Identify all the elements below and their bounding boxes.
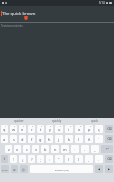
button[interactable]: Backspace — [105, 125, 113, 133]
button[interactable]: Backspace — [105, 155, 113, 163]
staticText: ç — [98, 127, 100, 132]
staticText: c — [26, 147, 28, 152]
button[interactable]: f — [28, 135, 35, 143]
button[interactable]: ? — [28, 155, 35, 163]
staticText: ? — [31, 157, 33, 162]
button[interactable]: ¿ — [19, 155, 26, 163]
button[interactable]: b — [41, 145, 49, 153]
staticText: r — [31, 127, 33, 132]
button[interactable]: 4 — [28, 125, 35, 133]
button[interactable]: Move cursor left — [95, 165, 103, 173]
button[interactable]: g — [37, 135, 44, 143]
staticText: ¿ — [22, 157, 24, 162]
button[interactable]: ) — [75, 155, 83, 163]
button[interactable]: ñ — [85, 135, 93, 143]
button[interactable]: Enter — [101, 145, 113, 153]
button[interactable]: z — [5, 145, 12, 153]
staticText: ?123 — [2, 168, 8, 171]
staticText: 5 — [41, 125, 43, 128]
staticText: k — [68, 137, 71, 142]
staticText: quicker — [14, 119, 24, 123]
button[interactable]: : — [46, 155, 53, 163]
button[interactable]: ( — [65, 155, 73, 163]
staticText: English (US) — [55, 168, 69, 171]
staticText: ⚙ — [13, 168, 16, 171]
button[interactable]: Settings — [11, 165, 18, 173]
staticText: - — [84, 147, 86, 152]
button[interactable]: 2 — [10, 125, 17, 133]
button[interactable]: ?123 — [1, 165, 9, 173]
button[interactable]: ; — [37, 155, 44, 163]
staticText: quick — [91, 119, 99, 123]
staticText: ( — [68, 157, 70, 162]
button[interactable]: quickly — [38, 118, 76, 124]
button[interactable]: 3 — [19, 125, 26, 133]
button[interactable]: 8 — [65, 125, 73, 133]
staticText: m — [63, 147, 67, 152]
button[interactable]: English (US) — [30, 165, 93, 173]
button[interactable]: j — [55, 135, 63, 143]
button[interactable]: 7 — [55, 125, 63, 133]
staticText: 1 — [5, 125, 7, 128]
button[interactable]: d — [19, 135, 26, 143]
staticText: x — [16, 147, 19, 152]
button[interactable]: a — [1, 135, 8, 143]
button[interactable]: l — [75, 135, 83, 143]
button[interactable]: 0 — [85, 125, 93, 133]
button[interactable]: , — [85, 155, 93, 163]
staticText: . — [98, 157, 100, 162]
button[interactable]: k — [65, 135, 73, 143]
button[interactable]: _ — [91, 145, 99, 153]
staticText: 9 — [80, 125, 82, 128]
button[interactable]: Move cursor right — [105, 165, 113, 173]
staticText: a — [3, 137, 6, 142]
staticText: 6 — [50, 125, 52, 128]
button[interactable]: c — [23, 145, 30, 153]
button[interactable]: 5 — [37, 125, 44, 133]
button[interactable]: quicker — [0, 118, 38, 124]
button[interactable]: 6 — [46, 125, 53, 133]
staticText: u — [58, 127, 61, 132]
staticText: s — [13, 137, 15, 142]
button[interactable]: n — [51, 145, 59, 153]
button[interactable]: 1 — [1, 125, 8, 133]
staticText: i — [68, 127, 70, 132]
staticText: : — [49, 157, 50, 162]
button[interactable]: - — [81, 145, 89, 153]
staticText: ⇧ — [3, 157, 6, 161]
staticText: The quick brown — [2, 10, 36, 16]
staticText: v — [35, 147, 37, 152]
button[interactable]: v — [32, 145, 39, 153]
staticText: ñ — [88, 137, 91, 142]
button[interactable]: s — [10, 135, 17, 143]
button[interactable]: ´ — [95, 135, 103, 143]
button[interactable]: ! — [10, 155, 17, 163]
button[interactable]: · — [71, 145, 79, 153]
button[interactable]: h — [46, 135, 53, 143]
button[interactable]: . — [95, 155, 103, 163]
staticText: p — [88, 127, 91, 132]
button[interactable]: quick — [76, 118, 114, 124]
button[interactable]: 9 — [75, 125, 83, 133]
button[interactable]: m — [61, 145, 69, 153]
staticText: f — [31, 137, 33, 142]
staticText: 7 — [60, 125, 62, 128]
staticText: y — [49, 127, 51, 132]
staticText: ; — [40, 157, 41, 162]
button[interactable]: Backspace — [105, 135, 113, 143]
button[interactable]: " — [55, 155, 63, 163]
staticText: 2 — [14, 125, 16, 128]
staticText: Textview contents — [1, 24, 23, 28]
staticText: q — [3, 127, 6, 132]
button[interactable]: Emoji — [20, 165, 28, 173]
staticText: 4 — [32, 125, 34, 128]
staticText: l — [78, 137, 80, 142]
staticText: ☺ — [22, 168, 26, 171]
staticText: j — [58, 137, 60, 142]
staticText: d — [21, 137, 24, 142]
staticText: z — [8, 147, 10, 152]
button[interactable]: x — [14, 145, 21, 153]
button[interactable]: ç — [95, 125, 103, 133]
staticText: · — [74, 147, 76, 152]
button[interactable]: Shift — [1, 155, 8, 163]
